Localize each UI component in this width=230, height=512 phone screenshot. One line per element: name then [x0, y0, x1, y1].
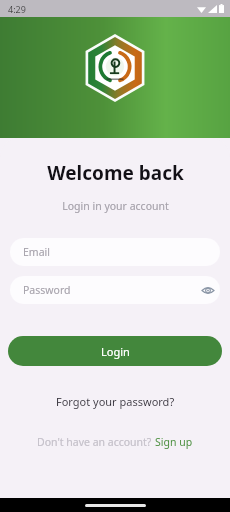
staticText: Don't have an account? [37, 435, 155, 449]
staticText: Sign up [155, 435, 193, 449]
button[interactable]: Email [10, 238, 220, 266]
button[interactable]: Show password [196, 278, 220, 302]
staticText: Login in your account [62, 199, 169, 213]
button[interactable]: Login [8, 336, 222, 366]
staticText: Login [101, 344, 130, 359]
button[interactable]: Sign up [155, 435, 193, 449]
button[interactable]: Forgot your password? [50, 391, 181, 412]
button[interactable]: Password [10, 276, 220, 304]
staticText: Email [23, 245, 50, 259]
staticText: Forgot your password? [56, 394, 175, 409]
staticText: Password [23, 283, 71, 297]
staticText: 4:29 [8, 3, 26, 15]
staticText: Welcome back [47, 160, 184, 186]
